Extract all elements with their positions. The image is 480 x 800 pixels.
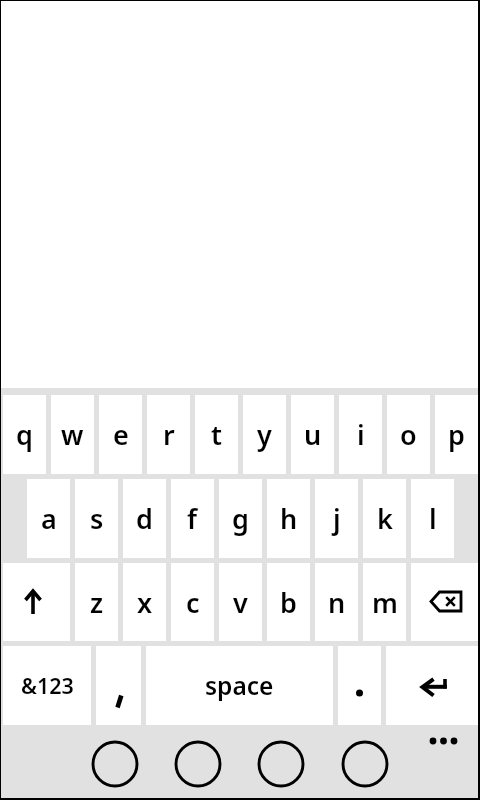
staticText: v bbox=[233, 584, 248, 621]
button[interactable]: r bbox=[147, 395, 190, 474]
button[interactable]: e bbox=[99, 395, 142, 474]
staticText: u bbox=[304, 416, 322, 453]
staticText: c bbox=[186, 584, 200, 621]
button[interactable]: m bbox=[363, 563, 406, 641]
button[interactable]: d bbox=[123, 479, 166, 558]
staticText: d bbox=[136, 500, 153, 537]
button[interactable]: space bbox=[146, 646, 333, 725]
staticText: a bbox=[41, 500, 57, 537]
button[interactable] bbox=[411, 563, 478, 641]
staticText: e bbox=[113, 416, 129, 453]
button[interactable]: b bbox=[267, 563, 310, 641]
staticText: x bbox=[137, 584, 153, 621]
button[interactable]: f bbox=[171, 479, 214, 558]
button[interactable]: h bbox=[267, 479, 310, 558]
button[interactable]: y bbox=[243, 395, 286, 474]
staticText: f bbox=[187, 500, 198, 537]
staticText: m bbox=[372, 584, 398, 621]
button[interactable]: o bbox=[387, 395, 430, 474]
staticText: space bbox=[205, 669, 274, 702]
staticText: h bbox=[280, 500, 298, 537]
button[interactable] bbox=[96, 646, 141, 725]
staticText: r bbox=[163, 416, 175, 453]
button[interactable]: k bbox=[363, 479, 406, 558]
button[interactable]: g bbox=[219, 479, 262, 558]
button[interactable]: s bbox=[75, 479, 118, 558]
button[interactable]: u bbox=[291, 395, 334, 474]
staticText: &123 bbox=[21, 671, 74, 700]
staticText: l bbox=[429, 500, 437, 537]
button[interactable]: n bbox=[315, 563, 358, 641]
button[interactable] bbox=[386, 646, 478, 725]
button[interactable]: w bbox=[51, 395, 94, 474]
staticText: s bbox=[90, 500, 104, 537]
button[interactable]: l bbox=[411, 479, 454, 558]
button[interactable]: p bbox=[435, 395, 478, 474]
staticText: g bbox=[232, 500, 249, 537]
button[interactable]: x bbox=[123, 563, 166, 641]
button[interactable]: &123 bbox=[3, 646, 91, 725]
staticText: i bbox=[357, 416, 365, 453]
button[interactable]: j bbox=[315, 479, 358, 558]
staticText: j bbox=[333, 500, 341, 537]
staticText: o bbox=[400, 416, 417, 453]
button[interactable]: t bbox=[195, 395, 238, 474]
button[interactable]: z bbox=[75, 563, 118, 641]
staticText: t bbox=[211, 416, 222, 453]
staticText: k bbox=[377, 500, 393, 537]
button[interactable]: c bbox=[171, 563, 214, 641]
button[interactable]: v bbox=[219, 563, 262, 641]
staticText: n bbox=[328, 584, 346, 621]
staticText: q bbox=[16, 416, 33, 453]
button[interactable]: a bbox=[27, 479, 70, 558]
button[interactable]: i bbox=[339, 395, 382, 474]
staticText: y bbox=[257, 416, 272, 453]
button[interactable]: q bbox=[3, 395, 46, 474]
staticText: b bbox=[280, 584, 297, 621]
staticText: w bbox=[61, 416, 84, 453]
staticText: z bbox=[90, 584, 104, 621]
button[interactable] bbox=[338, 646, 381, 725]
staticText: p bbox=[448, 416, 465, 453]
button[interactable] bbox=[3, 563, 70, 641]
